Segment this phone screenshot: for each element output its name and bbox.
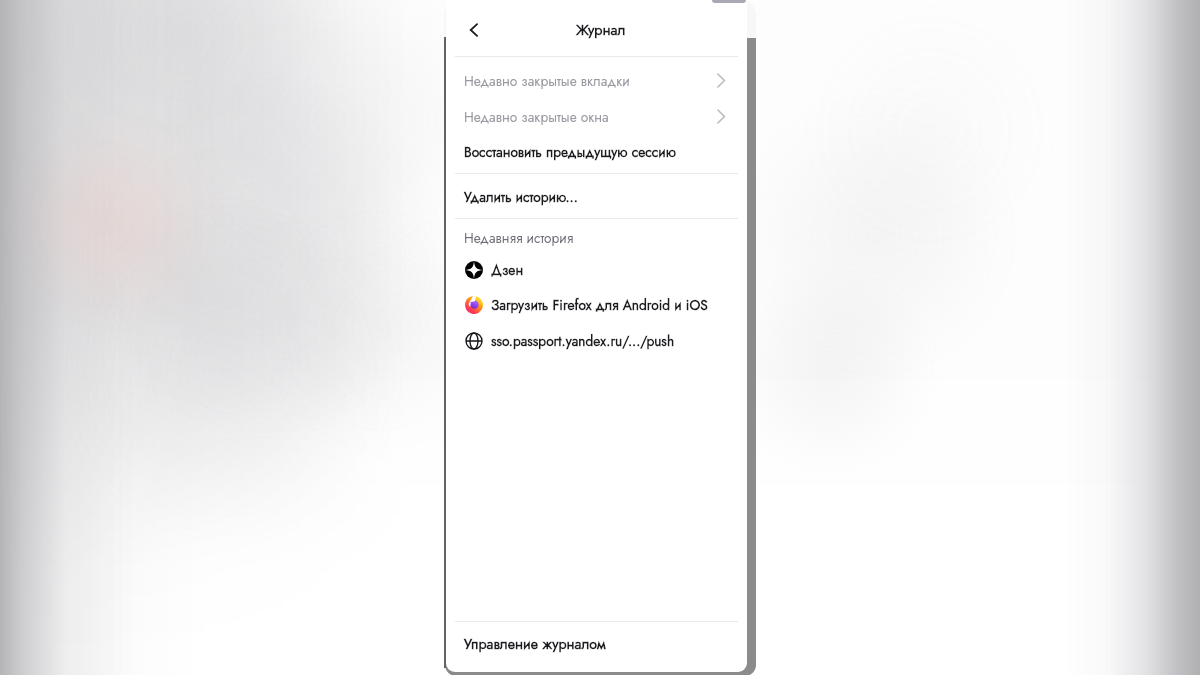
button[interactable]: Недавно закрытые вкладки xyxy=(446,63,747,98)
button[interactable]: Управление журналом xyxy=(446,627,747,662)
staticText: Недавняя история xyxy=(464,228,574,248)
button[interactable]: Назад xyxy=(457,14,489,46)
staticText: Восстановить предыдущую сессию xyxy=(464,142,676,162)
button[interactable]: Удалить историю... xyxy=(446,179,747,214)
button[interactable]: Загрузить Firefox для Android и iOS xyxy=(446,287,747,322)
button[interactable]: sso.passport.yandex.ru/.../push xyxy=(446,323,747,358)
staticText: Управление журналом xyxy=(464,634,606,655)
button[interactable]: Восстановить предыдущую сессию xyxy=(446,134,747,169)
staticText: Недавно закрытые окна xyxy=(464,107,609,127)
staticText: Недавно закрытые вкладки xyxy=(464,71,630,91)
staticText: Дзен xyxy=(491,260,524,280)
staticText: sso.passport.yandex.ru/.../push xyxy=(491,331,675,351)
staticText: Загрузить Firefox для Android и iOS xyxy=(491,295,708,315)
staticText: Удалить историю... xyxy=(464,187,578,207)
staticText: Журнал xyxy=(576,20,626,41)
button[interactable]: Недавно закрытые окна xyxy=(446,99,747,134)
button[interactable]: Дзен xyxy=(446,252,747,287)
